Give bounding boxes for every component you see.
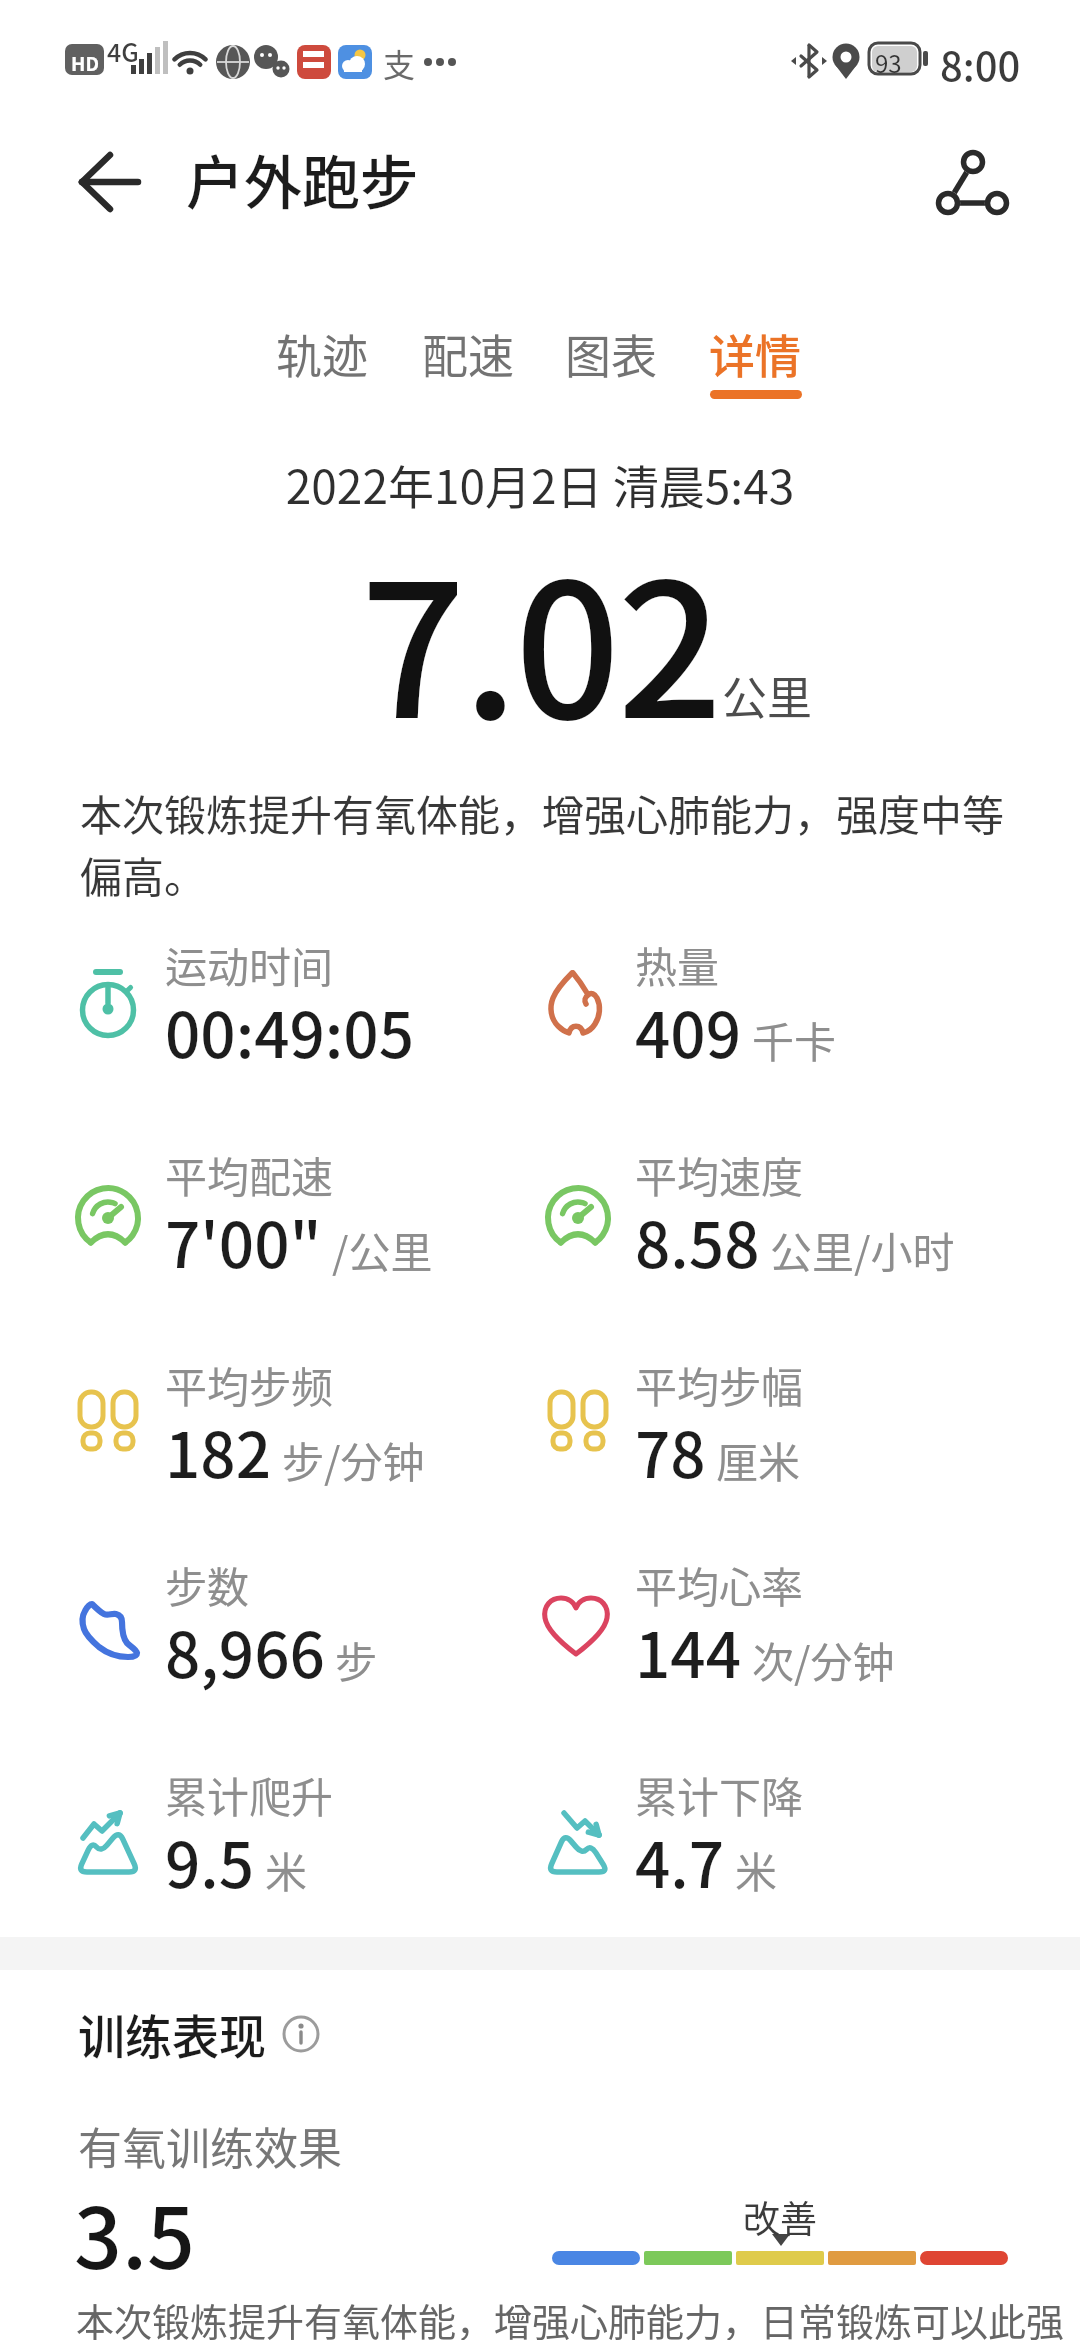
staticText: 8,966	[165, 1606, 325, 1696]
staticText: 训练表现	[78, 1999, 266, 2067]
staticText: 平均速度	[635, 1144, 804, 1205]
staticText: 8:00	[940, 35, 1021, 93]
button[interactable]	[549, 310, 674, 402]
staticText: 米	[265, 1839, 308, 1900]
staticText: 米	[735, 1839, 778, 1900]
staticText: 144	[635, 1606, 742, 1696]
button[interactable]	[693, 310, 818, 402]
button[interactable]	[260, 310, 385, 402]
button[interactable]	[920, 135, 1030, 230]
staticText: 热量	[635, 934, 720, 995]
staticText: 步/分钟	[282, 1429, 425, 1490]
staticText: 公里/小时	[770, 1219, 955, 1280]
staticText: 平均心率	[635, 1554, 804, 1615]
staticText: 本次锻炼提升有氧体能，增强心肺能力，强度中等偏高。	[80, 782, 1020, 905]
staticText: 累计下降	[635, 1764, 804, 1825]
staticText: 00:49:05	[165, 986, 414, 1076]
staticText: 8.58	[635, 1196, 760, 1286]
staticText: 2022年10月2日 清晨5:43	[0, 451, 1080, 518]
staticText: 4G	[107, 33, 139, 69]
staticText: 平均步频	[165, 1354, 334, 1415]
staticText: /公里	[332, 1219, 433, 1280]
staticText: 户外跑步	[186, 137, 419, 221]
staticText: 运动时间	[165, 934, 334, 995]
staticText: 93	[875, 45, 902, 80]
staticText: 轨迹	[276, 320, 368, 387]
button[interactable]	[58, 135, 158, 230]
staticText: 千卡	[752, 1009, 837, 1070]
staticText: 公里	[722, 663, 813, 728]
button[interactable]	[278, 2010, 326, 2058]
staticText: 4.7	[635, 1816, 725, 1906]
staticText: 本次锻炼提升有氧体能，增强心肺能力，日常锻炼可以此强	[76, 2292, 1080, 2340]
staticText: 有氧训练效果	[78, 2114, 342, 2178]
staticText: 平均步幅	[635, 1354, 804, 1415]
button[interactable]	[406, 310, 531, 402]
staticText: 7.02	[0, 503, 1080, 771]
staticText: 厘米	[716, 1429, 801, 1490]
staticText: 详情	[709, 320, 801, 387]
staticText: 支	[383, 40, 416, 86]
staticText: 78	[635, 1406, 706, 1496]
staticText: 步数	[165, 1554, 250, 1615]
staticText: 平均配速	[165, 1144, 334, 1205]
staticText: 7'00"	[165, 1196, 322, 1286]
staticText: 9.5	[165, 1816, 255, 1906]
staticText: 409	[635, 986, 742, 1076]
staticText: 累计爬升	[165, 1764, 334, 1825]
staticText: 配速	[422, 320, 514, 387]
staticText: 步	[335, 1629, 378, 1690]
staticText: 182	[165, 1406, 272, 1496]
staticText: 次/分钟	[752, 1629, 895, 1690]
staticText: 改善	[743, 2190, 817, 2244]
staticText: 图表	[565, 320, 657, 387]
staticText: 3.5	[74, 2172, 195, 2294]
staticText: HD	[71, 49, 99, 77]
